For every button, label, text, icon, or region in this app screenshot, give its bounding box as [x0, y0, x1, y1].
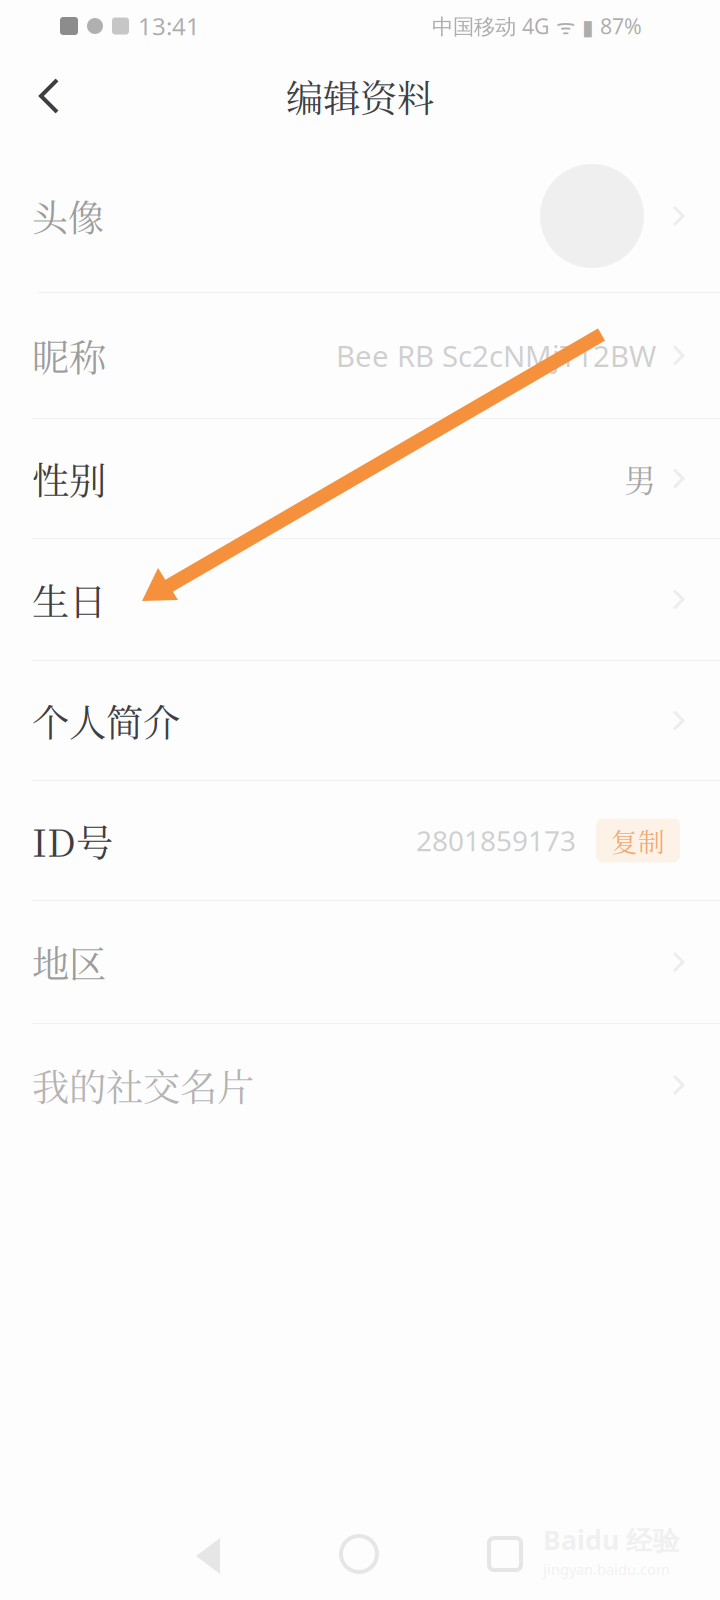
staticText: 2801859173: [416, 822, 576, 859]
button[interactable]: Home: [0, 1488, 407, 1596]
staticText: Bee RB Sc2cNMjT12BW: [336, 336, 656, 375]
button[interactable]: Back: [0, 54, 86, 138]
button[interactable]: 性别: [0, 419, 720, 538]
staticText: 性别: [32, 452, 106, 505]
staticText: 昵称: [32, 329, 106, 382]
button[interactable]: Recents: [0, 1488, 551, 1596]
button[interactable]: ID号: [0, 781, 720, 900]
button[interactable]: 我的社交名片: [0, 1024, 720, 1146]
staticText: jingyan.baidu.com: [543, 1559, 670, 1579]
staticText: Baidu 经验: [543, 1522, 680, 1558]
staticText: 个人简介: [32, 694, 180, 747]
button[interactable]: 地区: [0, 901, 720, 1023]
button[interactable]: 昵称: [0, 293, 720, 418]
button[interactable]: 个人简介: [0, 661, 720, 780]
staticText: 中国移动 4G ᯤ ▮ 87%: [432, 12, 642, 40]
staticText: 地区: [32, 935, 106, 989]
button[interactable]: 复制: [596, 818, 680, 862]
staticText: 复制: [611, 821, 665, 860]
button[interactable]: 生日: [0, 539, 720, 660]
staticText: 生日: [32, 573, 106, 626]
staticText: 13:41: [138, 10, 200, 42]
staticText: 我的社交名片: [32, 1058, 254, 1112]
staticText: 编辑资料: [286, 69, 434, 123]
staticText: 头像: [32, 190, 104, 242]
button[interactable]: 头像: [0, 140, 720, 292]
staticText: ID号: [32, 814, 113, 867]
staticText: 男: [624, 455, 656, 501]
